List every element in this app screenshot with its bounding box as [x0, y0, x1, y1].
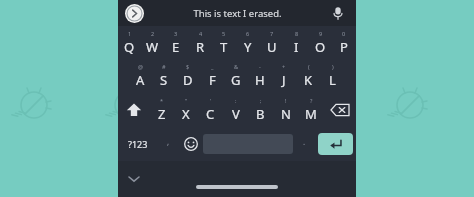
staticText: 6 [246, 30, 250, 37]
button[interactable]: 2 [141, 26, 164, 59]
button[interactable]: 1 [118, 26, 141, 59]
staticText: - [259, 63, 261, 70]
button[interactable]: * [150, 93, 174, 127]
staticText: 4 [199, 30, 203, 37]
button[interactable]: ! [273, 93, 298, 127]
staticText: I [294, 38, 299, 56]
button[interactable]: ) [320, 59, 344, 93]
button[interactable]: ? [298, 93, 323, 127]
button[interactable]: 0 [332, 26, 356, 59]
button[interactable]: Hide keyboard [124, 169, 144, 189]
staticText: H [255, 71, 265, 89]
staticText: _ [211, 63, 214, 70]
staticText: C [206, 105, 215, 123]
staticText: Q [124, 38, 135, 56]
staticText: 3 [174, 30, 178, 37]
staticText: + [282, 63, 286, 70]
staticText: K [304, 71, 313, 89]
staticText: W [146, 38, 159, 56]
button[interactable]: Voice input [329, 4, 347, 22]
button[interactable]: 3 [164, 26, 188, 59]
button[interactable]: & [224, 59, 248, 93]
staticText: Y [244, 38, 252, 56]
button[interactable]: 6 [236, 26, 260, 59]
staticText: * [160, 97, 164, 104]
button[interactable]: # [152, 59, 176, 93]
button[interactable]: 7 [260, 26, 284, 59]
staticText: 8 [295, 30, 299, 37]
staticText: ) [332, 63, 334, 70]
staticText: N [281, 105, 291, 123]
staticText: 0 [342, 30, 346, 37]
staticText: . [303, 136, 306, 147]
staticText: G [231, 71, 241, 89]
button[interactable]: 9 [308, 26, 332, 59]
button[interactable]: Emoji [179, 127, 203, 161]
button[interactable]: 5 [212, 26, 236, 59]
staticText: V [232, 105, 240, 123]
button[interactable]: ( [296, 59, 320, 93]
staticText: : [235, 97, 237, 104]
staticText: This is text I erased. [193, 7, 282, 20]
button[interactable]: Next suggestions [125, 4, 144, 23]
staticText: O [315, 38, 326, 56]
button[interactable]: , [157, 127, 179, 161]
staticText: M [305, 105, 317, 123]
button[interactable]: : [223, 93, 248, 127]
button[interactable]: Enter [318, 133, 353, 155]
button[interactable]: ' [198, 93, 223, 127]
staticText: D [183, 71, 193, 89]
staticText: $ [186, 63, 190, 70]
staticText: & [234, 63, 239, 70]
staticText: " [185, 97, 188, 104]
staticText: 5 [222, 30, 226, 37]
button[interactable]: Shift [118, 93, 150, 127]
staticText: A [136, 71, 145, 89]
staticText: E [172, 38, 180, 56]
button[interactable]: Backspace [323, 93, 356, 127]
staticText: ' [210, 97, 212, 104]
staticText: U [267, 38, 277, 56]
staticText: L [329, 71, 336, 89]
button[interactable]: ; [248, 93, 273, 127]
button[interactable]: ?123 [118, 127, 157, 161]
staticText: ; [260, 97, 262, 104]
staticText: ! [285, 97, 287, 104]
staticText: 2 [151, 30, 155, 37]
button[interactable]: _ [200, 59, 224, 93]
staticText: P [340, 38, 348, 56]
staticText: X [182, 105, 190, 123]
staticText: T [220, 38, 228, 56]
staticText: 9 [319, 30, 323, 37]
staticText: # [162, 63, 166, 70]
staticText: , [167, 136, 170, 147]
staticText: ( [308, 63, 310, 70]
button[interactable]: $ [176, 59, 200, 93]
staticText: R [196, 38, 205, 56]
button[interactable]: " [174, 93, 198, 127]
button[interactable]: 8 [284, 26, 308, 59]
staticText: J [282, 71, 286, 89]
staticText: 1 [128, 30, 132, 37]
staticText: @ [138, 63, 143, 70]
staticText: B [256, 105, 265, 123]
staticText: F [209, 71, 216, 89]
staticText: Z [158, 105, 166, 123]
staticText: S [160, 71, 168, 89]
staticText: 7 [270, 30, 274, 37]
button[interactable]: 4 [188, 26, 212, 59]
button[interactable]: + [272, 59, 296, 93]
staticText: ?123 [128, 138, 148, 150]
staticText: ? [310, 97, 313, 104]
button[interactable]: - [248, 59, 272, 93]
button[interactable]: @ [129, 59, 152, 93]
